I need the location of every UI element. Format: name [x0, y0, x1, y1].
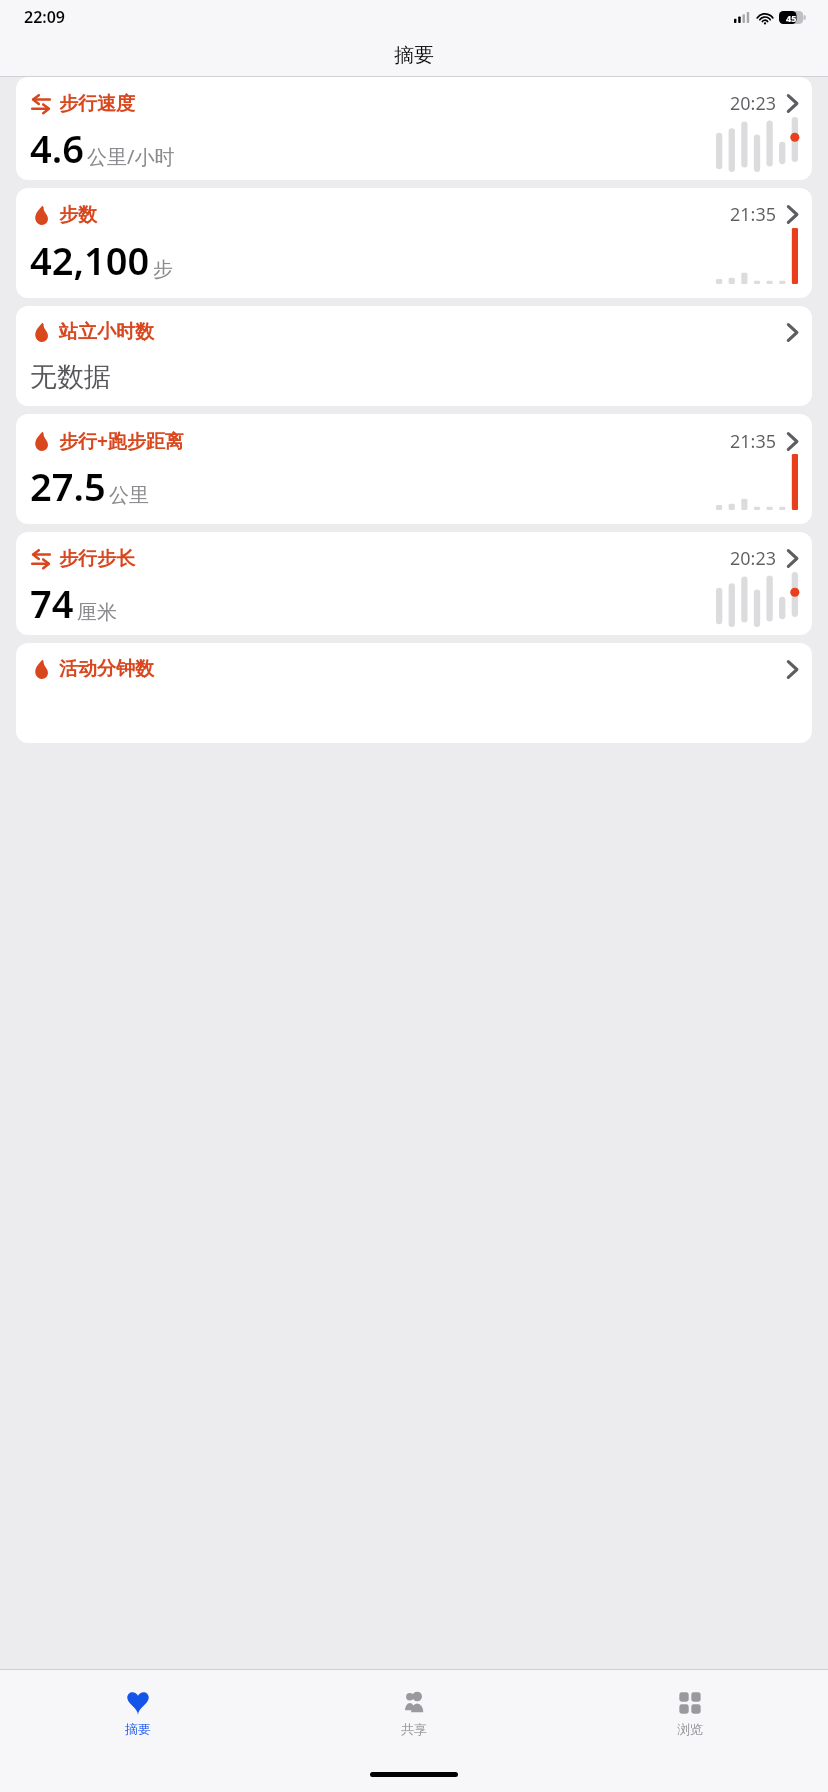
staticText: 4.6 [30, 122, 84, 174]
staticText: 21:35 [730, 429, 777, 454]
button[interactable]: 步数 [16, 188, 812, 298]
staticText: 27.5 [30, 460, 106, 512]
staticText: 活动分钟数 [59, 657, 154, 681]
staticText: 无数据 [30, 360, 111, 394]
button[interactable]: 摘要 [0, 1670, 276, 1756]
staticText: 20:23 [730, 546, 777, 571]
staticText: 步数 [59, 203, 97, 227]
button[interactable]: 浏览 [552, 1670, 828, 1756]
staticText: 20:23 [730, 91, 777, 116]
staticText: 厘米 [77, 600, 117, 625]
staticText: 74 [30, 577, 74, 629]
staticText: 步 [153, 257, 173, 282]
staticText: 步行+跑步距离 [59, 428, 184, 454]
staticText: 步行步长 [59, 547, 135, 571]
button[interactable]: 共享 [276, 1670, 552, 1756]
staticText: 22:09 [24, 6, 66, 28]
staticText: 摘要 [394, 43, 434, 68]
staticText: 摘要 [125, 1721, 151, 1737]
button[interactable]: 活动分钟数 [16, 643, 812, 743]
staticText: 浏览 [677, 1721, 703, 1737]
staticText: 21:35 [730, 202, 777, 227]
button[interactable]: 站立小时数 [16, 306, 812, 406]
staticText: 共享 [401, 1721, 427, 1737]
staticText: 公里/小时 [87, 143, 175, 170]
staticText: 45 [786, 12, 797, 24]
staticText: 公里 [109, 483, 149, 508]
staticText: 42,100 [30, 234, 150, 286]
button[interactable]: 步行步长 [16, 532, 812, 635]
button[interactable]: 步行速度 [16, 77, 812, 180]
staticText: 站立小时数 [59, 320, 154, 344]
staticText: 步行速度 [59, 92, 135, 116]
button[interactable]: 步行+跑步距离 [16, 414, 812, 524]
